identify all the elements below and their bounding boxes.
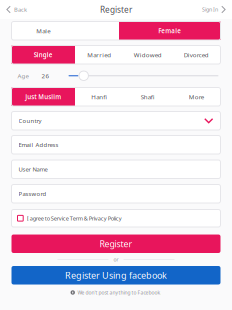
button[interactable]: Register (11, 234, 220, 253)
button[interactable]: User Name (11, 160, 220, 178)
button[interactable]: Just Muslim (11, 87, 75, 106)
staticText: More (189, 93, 204, 101)
staticText: I agree to Service Term & Privacy Policy (27, 214, 122, 222)
button[interactable]: Email Address (11, 135, 220, 154)
staticText: Male (36, 27, 50, 35)
staticText: Age (17, 72, 28, 80)
button[interactable]: Shafi (123, 87, 172, 106)
button[interactable]: Female (119, 21, 220, 40)
button[interactable]: Single (11, 45, 75, 64)
button[interactable]: Register Using facebook (11, 266, 220, 284)
staticText: Shafi (141, 93, 155, 101)
staticText: Widowed (134, 51, 162, 59)
staticText: Password (18, 190, 46, 198)
staticText: Just Muslim (25, 93, 61, 101)
staticText: Register (100, 4, 132, 15)
staticText: Divorced (184, 51, 209, 59)
button[interactable]: I agree to Service Term & Privacy Policy (11, 209, 220, 227)
button[interactable]: Back (0, 0, 33, 19)
staticText: Hanfi (91, 93, 107, 101)
staticText: 26 (41, 72, 49, 80)
staticText: Married (87, 51, 111, 59)
button[interactable]: Male (11, 21, 75, 40)
button[interactable]: Sign In (196, 0, 232, 19)
staticText: Register Using facebook (65, 269, 167, 281)
button[interactable]: Married (75, 45, 123, 64)
staticText: or (113, 256, 118, 263)
staticText: User Name (18, 165, 47, 173)
staticText: Sign In (202, 6, 218, 13)
staticText: We don't post anything to Facebook. (77, 289, 161, 296)
button[interactable]: Country (11, 111, 220, 130)
button[interactable]: Divorced (172, 45, 220, 64)
staticText: Single (34, 51, 53, 59)
button[interactable]: More (172, 87, 220, 106)
staticText: Female (158, 27, 181, 35)
staticText: Register (99, 238, 132, 250)
button[interactable]: Widowed (123, 45, 172, 64)
button[interactable]: Password (11, 184, 220, 203)
button[interactable]: Hanfi (75, 87, 123, 106)
staticText: Country (18, 117, 41, 125)
staticText: Email Address (18, 141, 58, 149)
staticText: Back (14, 6, 27, 13)
